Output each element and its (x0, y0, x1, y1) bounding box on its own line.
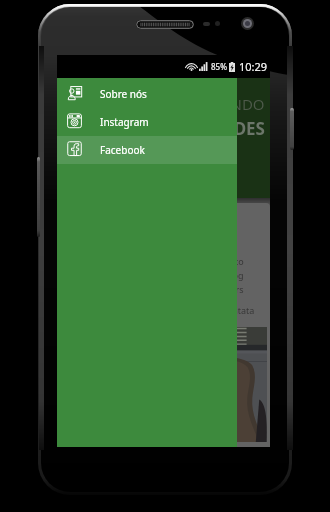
button[interactable]: Instagram (57, 108, 237, 136)
button[interactable]: Facebook (57, 136, 237, 164)
staticText: Cachorro de pequeno porte, todo preto (77, 255, 244, 267)
staticText: 10:29 (239, 59, 268, 74)
staticText: Quem tiver informacoes entre em contata (77, 304, 255, 316)
staticText: 85% (211, 61, 227, 72)
staticText: desaparecido desde ontem. Nome: dog (77, 269, 244, 281)
staticText: Visto pela ultima vez na rua das flowers (77, 283, 244, 295)
staticText: PROCURANDO (161, 94, 265, 114)
staticText: Instagram (100, 115, 149, 129)
staticText: Sobre nós (100, 87, 147, 101)
staticText: Facebook (100, 143, 145, 157)
staticText: NOVIDADES (165, 117, 265, 140)
button[interactable]: Sobre nós (57, 80, 237, 108)
